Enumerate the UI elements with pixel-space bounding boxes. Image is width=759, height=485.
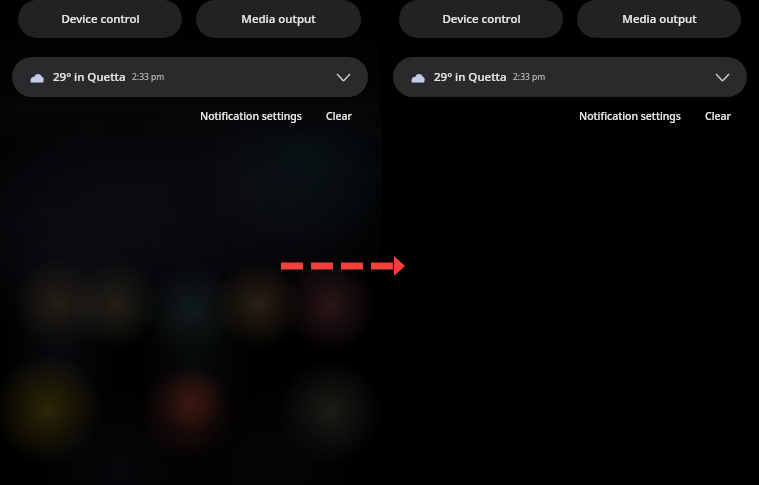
staticText: Media output	[622, 11, 697, 27]
button[interactable]: 29° in Quetta	[393, 57, 747, 97]
button[interactable]: Clear	[320, 106, 358, 126]
button[interactable]: Expand notification	[711, 66, 733, 88]
button[interactable]: Notification settings	[573, 106, 687, 126]
button[interactable]: Media output	[196, 0, 361, 38]
staticText: 29° in Quetta	[434, 69, 507, 85]
staticText: Device control	[442, 11, 521, 27]
button[interactable]: Clear	[699, 106, 737, 126]
button[interactable]: Device control	[399, 0, 563, 38]
button[interactable]: 29° in Quetta	[12, 57, 368, 97]
staticText: Clear	[326, 109, 352, 123]
staticText: Device control	[61, 11, 140, 27]
staticText: Notification settings	[200, 109, 302, 123]
staticText: 2:33 pm	[513, 71, 546, 83]
button[interactable]: Device control	[18, 0, 182, 38]
staticText: 29° in Quetta	[53, 69, 126, 85]
staticText: Media output	[241, 11, 316, 27]
button[interactable]: Expand notification	[332, 66, 354, 88]
staticText: Notification settings	[579, 109, 681, 123]
staticText: 2:33 pm	[132, 71, 165, 83]
button[interactable]: Media output	[577, 0, 741, 38]
staticText: Clear	[705, 109, 731, 123]
button[interactable]: Notification settings	[194, 106, 308, 126]
